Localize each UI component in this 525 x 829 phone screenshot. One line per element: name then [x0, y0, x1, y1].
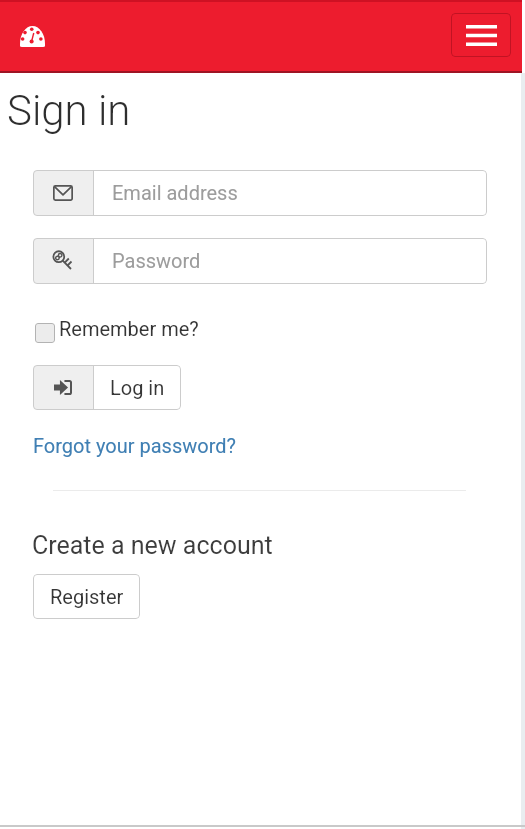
- staticText: Email address: [112, 181, 238, 204]
- button[interactable]: Toggle navigation menu: [451, 13, 511, 57]
- staticText: Create a new account: [32, 531, 273, 560]
- staticText: Password: [112, 249, 201, 272]
- button[interactable]: Password: [33, 238, 487, 284]
- staticText: Remember me?: [59, 317, 199, 340]
- button[interactable]: Forgot your password?: [33, 434, 236, 457]
- button[interactable]: Email address: [33, 170, 487, 216]
- button[interactable]: Log in: [33, 365, 181, 410]
- button[interactable]: Dashboard home: [10, 14, 54, 58]
- button[interactable]: Remember me?: [33, 318, 203, 348]
- staticText: Sign in: [7, 86, 131, 135]
- staticText: Log in: [110, 376, 165, 399]
- staticText: Register: [50, 585, 124, 608]
- button[interactable]: Register: [33, 574, 140, 619]
